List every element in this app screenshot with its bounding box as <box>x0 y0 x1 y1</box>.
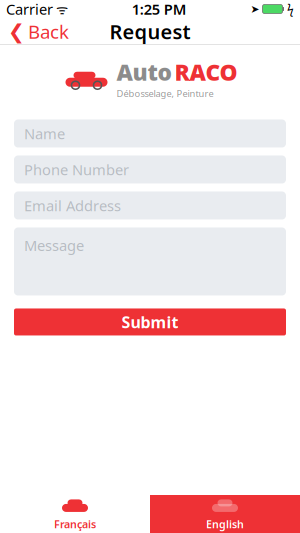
staticText: Phone Number <box>24 160 129 179</box>
button[interactable]: Français <box>0 495 150 533</box>
staticText: Email Address <box>24 196 121 215</box>
staticText: Message <box>24 235 84 255</box>
staticText: Back <box>28 19 69 44</box>
staticText: ➤ <box>250 3 259 15</box>
staticText: Submit <box>121 311 178 333</box>
button[interactable]: ❮ <box>0 17 77 45</box>
button[interactable]: English <box>150 495 300 533</box>
staticText: Auto <box>116 57 171 87</box>
staticText: RACO <box>174 57 237 87</box>
button[interactable]: Submit <box>14 308 286 335</box>
staticText: English <box>206 517 244 531</box>
staticText: Français <box>54 517 96 531</box>
staticText: Request <box>109 18 190 45</box>
staticText: Débosselage, Peinture <box>116 87 213 99</box>
staticText: Carrier <box>6 0 53 19</box>
staticText: ❮ <box>8 20 25 43</box>
staticText: 1:25 PM <box>132 0 187 19</box>
staticText: ϟ <box>287 1 294 17</box>
staticText: ᯤ <box>53 0 68 18</box>
staticText: Name <box>24 124 65 143</box>
